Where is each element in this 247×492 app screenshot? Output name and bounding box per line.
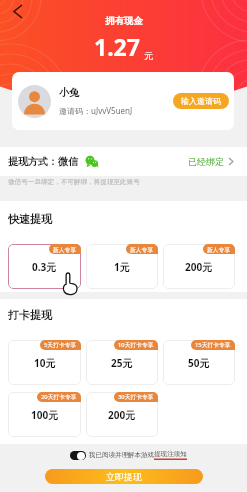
button[interactable]: 输入邀请码 xyxy=(173,93,229,109)
staticText: 0.3元 xyxy=(32,260,57,274)
staticText: 新人专享 xyxy=(130,246,154,253)
staticText: 邀请码：uJvvV5uenJ xyxy=(59,105,133,116)
staticText: 微信号一旦绑定，不可解绑，将提现至此账号 xyxy=(8,178,140,186)
staticText: 30天打卡专享 xyxy=(118,393,154,401)
staticText: 提现注须知 xyxy=(154,450,187,458)
staticText: 200元 xyxy=(108,408,136,422)
staticText: 50元 xyxy=(188,356,210,370)
button[interactable]: 200元 xyxy=(163,244,235,289)
button[interactable]: 立即提现 xyxy=(45,469,203,484)
button[interactable]: 50元 xyxy=(163,340,235,385)
button[interactable]: 1元 xyxy=(86,244,158,289)
button[interactable]: 200元 xyxy=(86,392,158,437)
staticText: 快速提现 xyxy=(8,212,52,226)
staticText: 已经绑定 xyxy=(188,156,224,167)
staticText: 20天打卡专享 xyxy=(41,393,77,401)
staticText: 10天打卡专享 xyxy=(118,341,154,349)
staticText: 1.27 xyxy=(94,31,140,62)
staticText: 立即提现 xyxy=(106,471,142,482)
staticText: 提现方式：微信 xyxy=(8,155,78,168)
button[interactable]: 10元 xyxy=(8,340,81,385)
button[interactable]: 100元 xyxy=(8,392,81,437)
staticText: 小兔 xyxy=(59,86,79,99)
staticText: 25元 xyxy=(111,356,133,370)
button[interactable]: Agree to terms xyxy=(70,451,86,460)
staticText: 200元 xyxy=(185,260,213,274)
button[interactable]: 已经绑定 xyxy=(188,156,233,167)
staticText: 新人专享 xyxy=(53,246,77,253)
button[interactable]: 提现注须知 xyxy=(154,450,187,460)
staticText: 1元 xyxy=(114,260,130,274)
staticText: 输入邀请码 xyxy=(181,96,221,106)
staticText: 我已阅读并理解本游戏 xyxy=(89,451,154,459)
staticText: 打卡提现 xyxy=(8,308,52,322)
staticText: 15天打卡专享 xyxy=(195,341,231,349)
staticText: 5天打卡专享 xyxy=(44,341,77,349)
button[interactable]: 25元 xyxy=(86,340,158,385)
staticText: 10元 xyxy=(34,356,56,370)
staticText: 元 xyxy=(144,50,153,61)
button[interactable]: 0.3元 xyxy=(8,244,81,289)
staticText: 100元 xyxy=(31,408,59,422)
staticText: 拥有现金 xyxy=(105,15,143,27)
staticText: 新人专享 xyxy=(207,246,231,253)
button[interactable]: Back xyxy=(9,2,27,20)
